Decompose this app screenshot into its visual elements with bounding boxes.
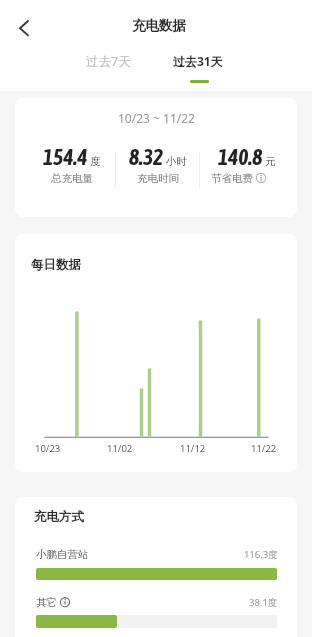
staticText: 过去31天 xyxy=(173,53,223,69)
staticText: 10/23 ~ 11/22 xyxy=(118,110,195,126)
staticText: 总充电量 xyxy=(51,172,93,185)
staticText: 小鹏自营站 xyxy=(36,548,89,561)
staticText: 154.4 度 xyxy=(43,145,101,169)
staticText: 8.32 小时 xyxy=(129,145,187,169)
staticText: 140.8 元 xyxy=(218,145,276,169)
staticText: 充电数据 xyxy=(132,17,186,34)
staticText: 11/02 xyxy=(107,442,133,455)
button[interactable]: 其它 xyxy=(34,594,94,610)
staticText: 11/22 xyxy=(251,442,277,455)
staticText: 每日数据 xyxy=(31,257,81,273)
button[interactable]: 过去31天 xyxy=(157,48,238,74)
staticText: 11/12 xyxy=(180,442,206,455)
staticText: 38.1度 xyxy=(249,596,278,609)
button[interactable] xyxy=(10,15,36,41)
staticText: 116.3度 xyxy=(244,548,278,561)
staticText: 充电时间 xyxy=(137,172,179,185)
staticText: 10/23 xyxy=(35,442,61,455)
button[interactable]: 过去7天 xyxy=(68,48,148,74)
staticText: 充电方式 xyxy=(34,509,84,525)
staticText: 过去7天 xyxy=(86,53,131,70)
staticText: 其它 xyxy=(36,596,57,609)
staticText: 节省电费 ⓘ xyxy=(211,171,267,185)
